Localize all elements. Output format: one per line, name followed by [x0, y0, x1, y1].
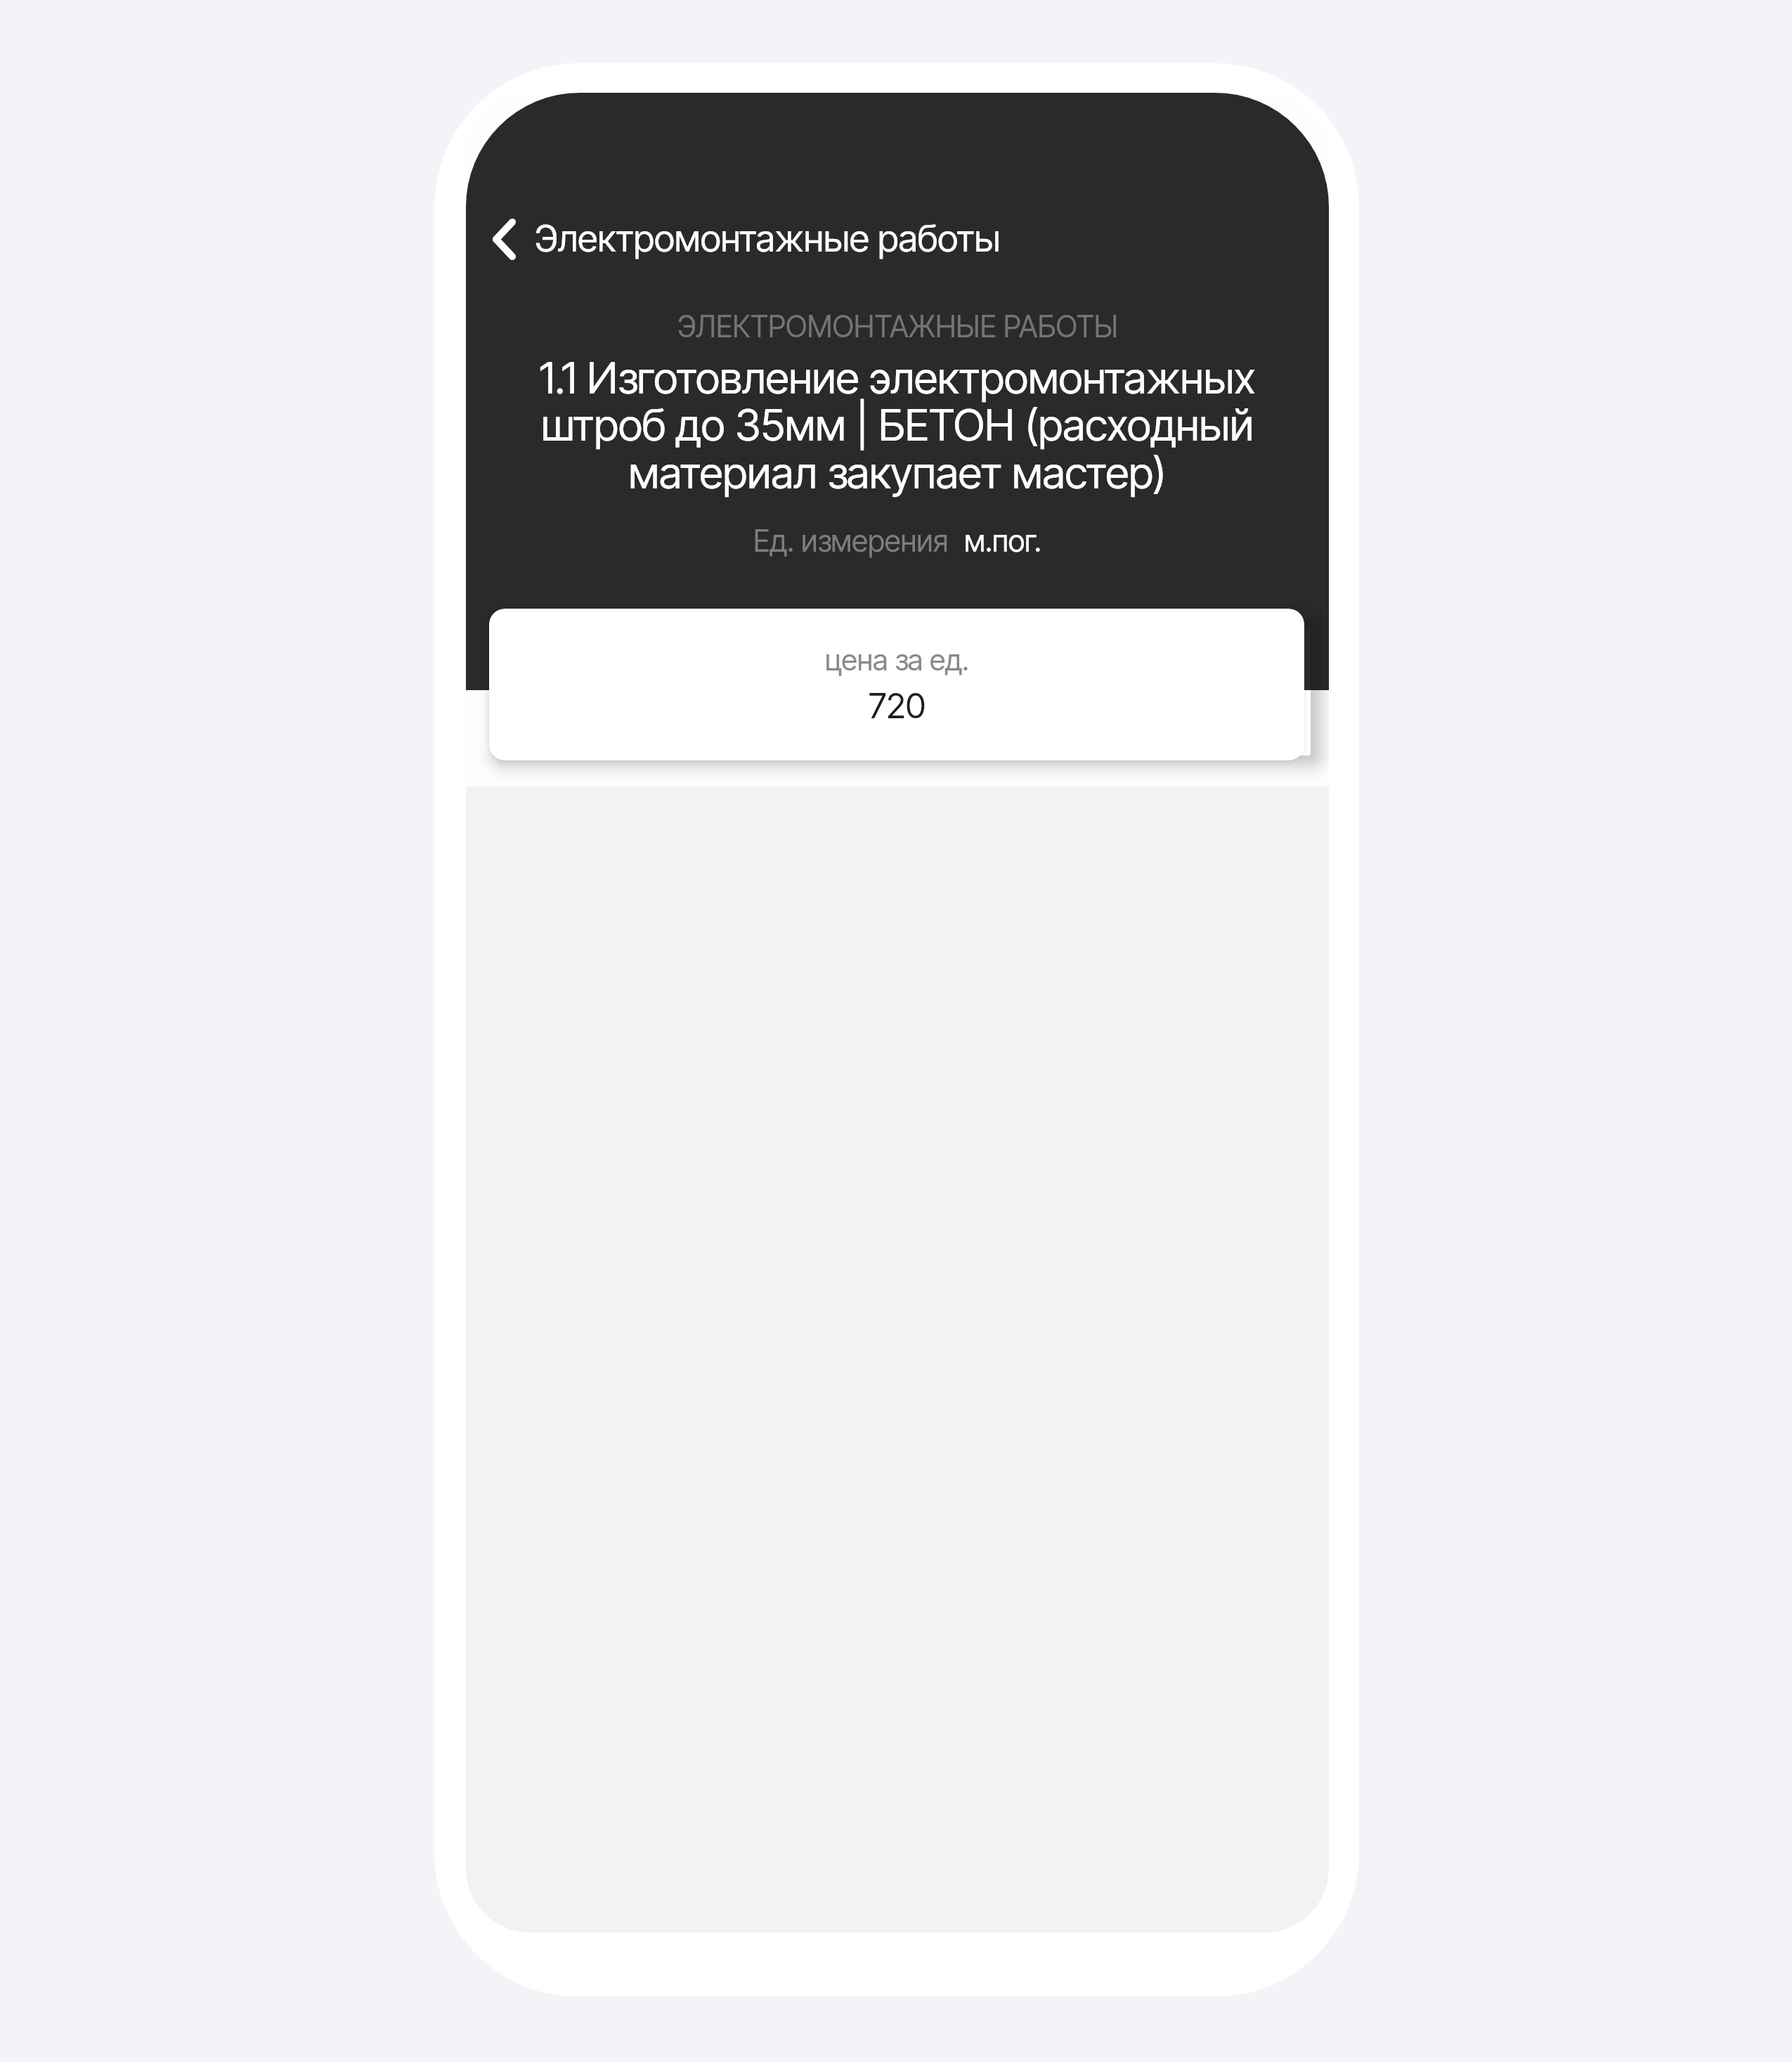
button[interactable]: Back: [466, 205, 545, 273]
staticText: ЭЛЕКТРОМОНТАЖНЫЕ РАБОТЫ: [677, 309, 1118, 344]
staticText: Электромонтажные работы: [535, 216, 1001, 261]
staticText: м.пог.: [964, 523, 1041, 559]
staticText: 1.1 Изготовление электромонтажных штроб …: [500, 351, 1295, 499]
staticText: цена за ед.: [825, 642, 969, 677]
staticText: 720: [869, 685, 926, 727]
button[interactable]: цена за ед.: [489, 609, 1304, 760]
staticText: Ед. измерения: [753, 523, 949, 559]
